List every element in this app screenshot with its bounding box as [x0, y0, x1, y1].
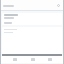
- button[interactable]: [2, 13, 62, 25]
- button[interactable]: Search: [56, 3, 61, 8]
- button[interactable]: Profile: [45, 56, 54, 63]
- button[interactable]: Home: [10, 56, 19, 63]
- button[interactable]: Library: [28, 56, 37, 63]
- button[interactable]: [2, 27, 62, 54]
